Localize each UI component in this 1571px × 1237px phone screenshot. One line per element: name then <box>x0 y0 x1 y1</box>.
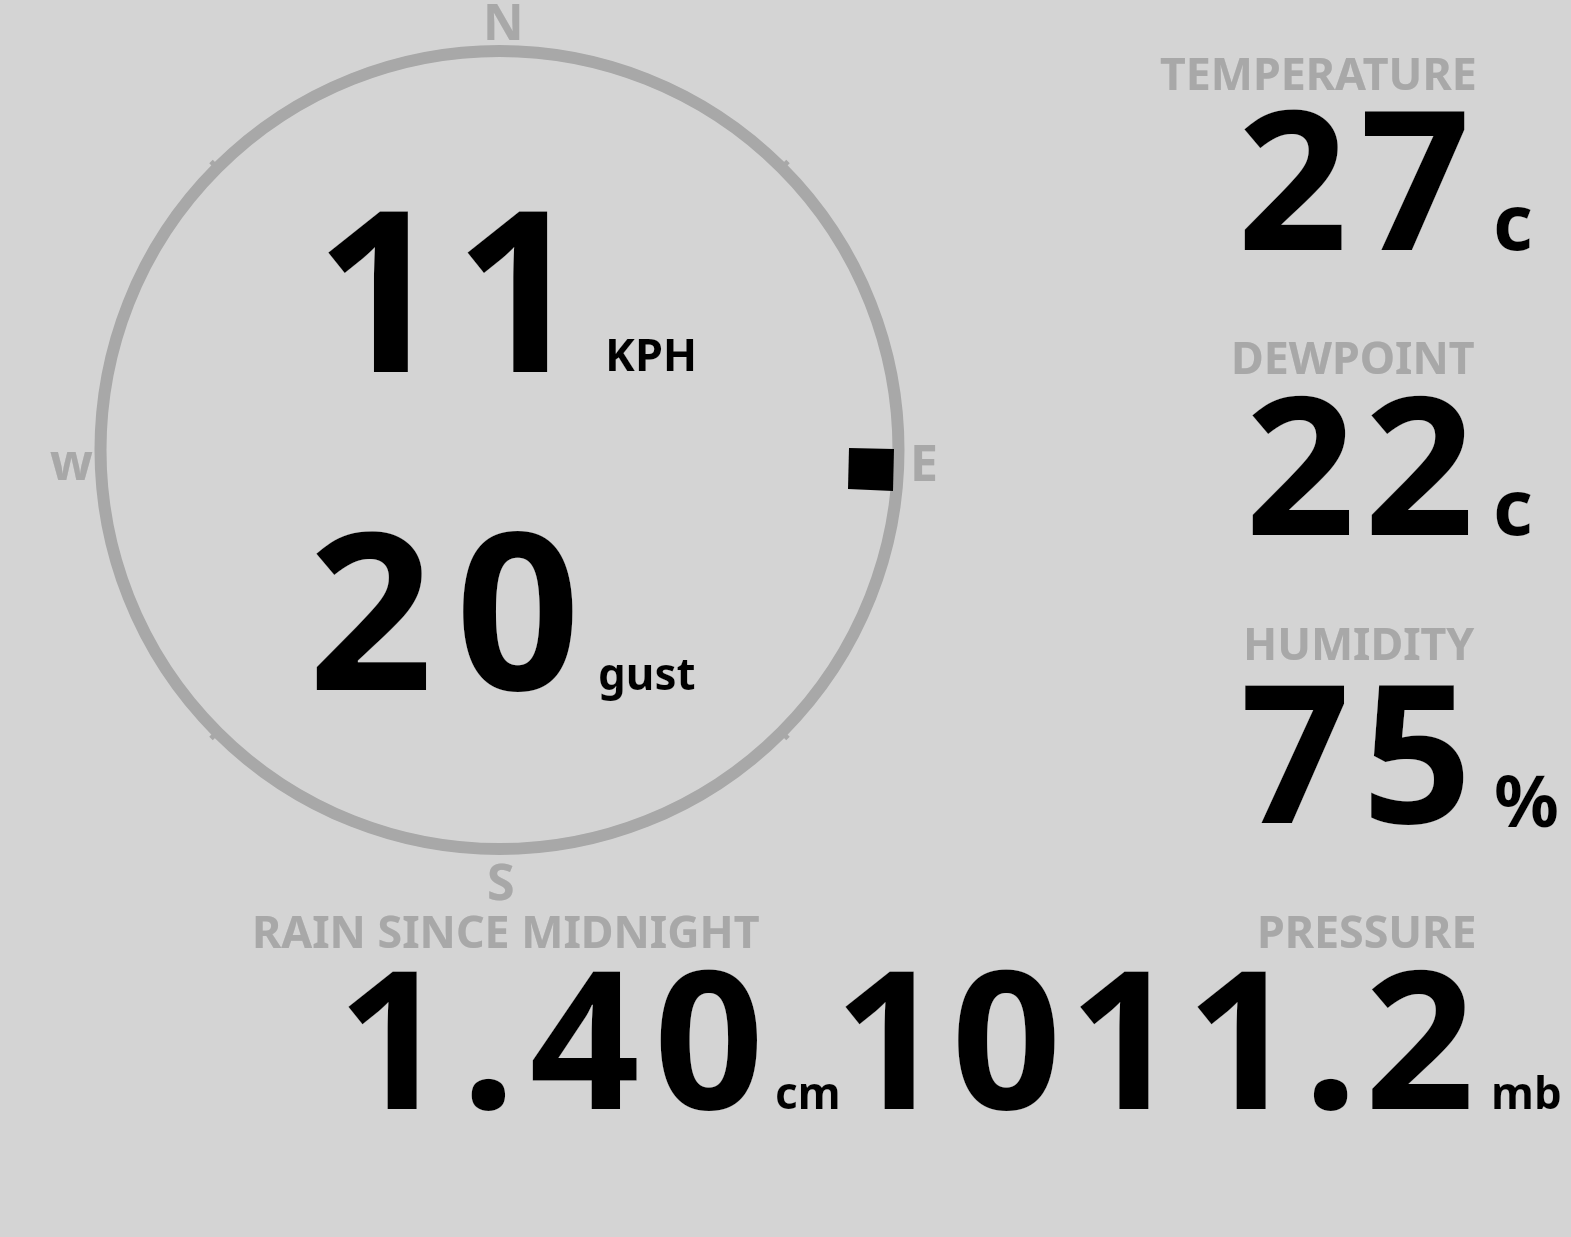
staticText: w <box>50 427 93 495</box>
staticText: mb <box>1491 1062 1562 1122</box>
staticText: DEWPOINT <box>1231 326 1475 387</box>
staticText: KPH <box>605 323 698 384</box>
staticText: c <box>1493 168 1533 273</box>
staticText: S <box>487 847 515 915</box>
staticText: 20 <box>308 456 603 754</box>
staticText: RAIN SINCE MIDNIGHT <box>252 900 760 961</box>
staticText: HUMIDITY <box>1243 612 1475 673</box>
staticText: 22 <box>1245 329 1483 592</box>
staticText: cm <box>775 1062 841 1122</box>
staticText: % <box>1494 750 1559 848</box>
staticText: E <box>910 428 938 496</box>
staticText: 27 <box>1237 43 1483 307</box>
staticText: PRESSURE <box>1257 900 1477 961</box>
staticText: TEMPERATURE <box>1160 42 1477 103</box>
button[interactable]: Temperature 27 degrees Celsius <box>1120 50 1560 260</box>
staticText: 11 <box>315 131 594 437</box>
staticText: c <box>1493 453 1533 558</box>
button[interactable]: Rain since midnight 1.40 centimetres <box>250 908 850 1118</box>
button[interactable]: Humidity 75 percent <box>1120 620 1560 830</box>
staticText: N <box>483 0 524 55</box>
button[interactable]: Dewpoint 22 degrees Celsius <box>1120 335 1560 545</box>
staticText: 1.40 <box>337 903 779 1166</box>
staticText: 75 <box>1240 617 1484 880</box>
button[interactable]: Wind 11 KPH, gusting 20, from the east <box>92 44 908 856</box>
staticText: 1011.2 <box>834 903 1482 1166</box>
button[interactable]: Pressure 1011.2 millibars <box>840 908 1560 1118</box>
staticText: gust <box>598 643 696 703</box>
